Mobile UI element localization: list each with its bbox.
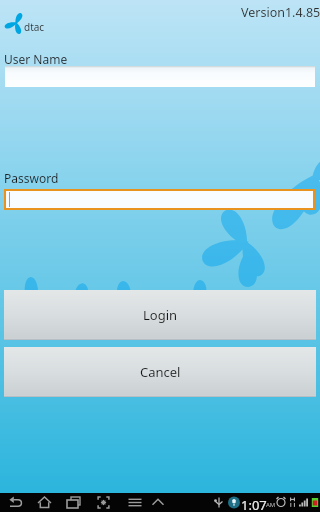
button[interactable] (6, 191, 313, 208)
staticText: Version1.4.85 (241, 4, 320, 21)
staticText: 1:07 (241, 496, 267, 512)
button[interactable] (5, 66, 315, 87)
staticText: Password (4, 170, 59, 186)
button[interactable]: Cancel (4, 347, 316, 397)
button[interactable]: Login (4, 290, 316, 340)
staticText: Login (143, 306, 178, 324)
staticText: AM (266, 501, 276, 509)
staticText: Cancel (140, 363, 181, 381)
staticText: dtac (24, 20, 45, 34)
staticText: User Name (4, 51, 68, 67)
